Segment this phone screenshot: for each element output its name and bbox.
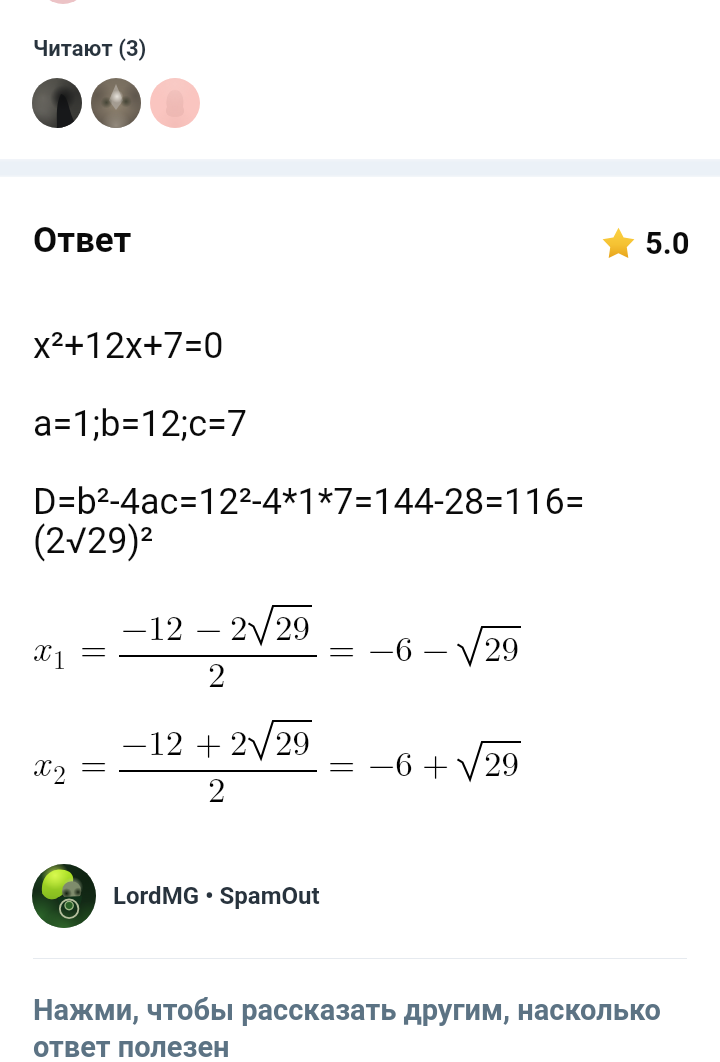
staticText: x xyxy=(32,733,50,787)
other: Rating 5.0 xyxy=(605,230,632,257)
button[interactable]: Reader avatar xyxy=(32,78,82,128)
staticText: a=1;b=12;c=7 xyxy=(33,403,248,445)
staticText: 2 xyxy=(208,763,226,813)
staticText: Читают (3) xyxy=(33,36,147,62)
button[interactable]: LordMG • SpamOut xyxy=(32,864,688,928)
staticText: 29 xyxy=(275,716,311,766)
staticText: + xyxy=(422,737,450,787)
button[interactable]: Reader avatar xyxy=(150,78,200,128)
staticText: − xyxy=(422,622,450,672)
staticText: − xyxy=(195,601,223,651)
staticText: = xyxy=(328,622,356,672)
button[interactable]: Rating 5.0 xyxy=(605,225,677,261)
staticText: 5.0 xyxy=(645,225,690,261)
staticText: 2 xyxy=(230,716,248,766)
staticText: Ответ xyxy=(33,220,132,261)
staticText: x xyxy=(32,618,50,672)
staticText: = xyxy=(80,737,108,787)
staticText: −12 xyxy=(121,601,184,651)
staticText: + xyxy=(195,716,223,766)
staticText: = xyxy=(80,622,108,672)
button[interactable]: Нажми, чтобы рассказать другим, наскольк… xyxy=(33,982,687,1062)
staticText: 2 xyxy=(53,755,67,792)
staticText: LordMG • SpamOut xyxy=(113,882,320,910)
staticText: −6 xyxy=(368,737,413,787)
staticText: −12 xyxy=(121,716,184,766)
staticText: D=b²-4ac=12²-4*1*7=144-28=116= xyxy=(33,481,585,523)
staticText: 2 xyxy=(208,648,226,698)
staticText: 29 xyxy=(275,601,311,651)
staticText: = xyxy=(328,737,356,787)
button[interactable]: Reader avatar xyxy=(91,78,141,128)
staticText: x²+12x+7=0 xyxy=(33,325,224,367)
staticText: (2√29)² xyxy=(33,520,154,562)
staticText: Нажми, чтобы рассказать другим, наскольк… xyxy=(33,993,661,1027)
staticText: ответ полезен xyxy=(33,1030,230,1062)
staticText: 1 xyxy=(53,640,67,677)
staticText: 2 xyxy=(230,601,248,651)
staticText: 29 xyxy=(484,622,520,672)
staticText: 29 xyxy=(484,737,520,787)
staticText: −6 xyxy=(368,622,413,672)
